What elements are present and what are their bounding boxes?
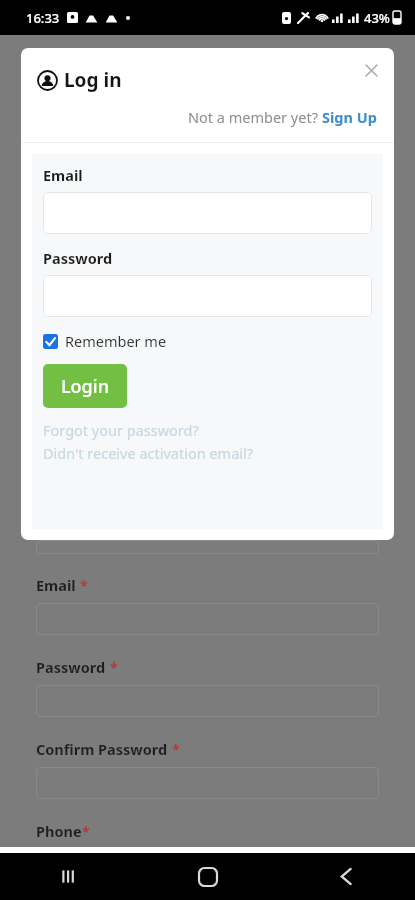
staticText: Login xyxy=(61,374,109,399)
staticText: Not a member yet? xyxy=(188,107,322,127)
button[interactable]: Text field xyxy=(43,275,372,317)
button[interactable]: Remember me xyxy=(43,331,167,351)
button[interactable]: Text field xyxy=(43,192,372,234)
staticText: 16:33 xyxy=(26,9,60,27)
staticText: Sign Up xyxy=(322,107,377,127)
button[interactable]: Email field xyxy=(36,603,379,635)
staticText: Log in xyxy=(64,67,122,93)
staticText: * xyxy=(110,658,118,677)
staticText: * xyxy=(82,822,90,841)
button[interactable]: Sign Up xyxy=(322,107,377,127)
button[interactable]: Didn't receive activation email? xyxy=(43,443,254,463)
button[interactable]: Close xyxy=(357,56,385,84)
staticText: Email xyxy=(36,575,76,595)
button[interactable]: Home xyxy=(139,853,277,900)
staticText: Email xyxy=(43,165,83,185)
button[interactable]: Password field xyxy=(36,685,379,717)
button[interactable]: Back xyxy=(277,853,415,900)
staticText: Phone xyxy=(36,821,82,841)
staticText: 43% xyxy=(364,9,390,27)
staticText: Password xyxy=(43,248,113,268)
staticText: Didn't receive activation email? xyxy=(43,443,254,463)
staticText: * xyxy=(172,740,180,759)
staticText: Confirm Password xyxy=(36,739,168,759)
button[interactable]: Recent apps xyxy=(0,853,139,900)
staticText: Password xyxy=(36,657,106,677)
staticText: * xyxy=(80,576,88,595)
button[interactable]: Login xyxy=(43,364,127,408)
button[interactable]: Forgot your password? xyxy=(43,420,199,440)
button[interactable]: Confirm Password field xyxy=(36,767,379,799)
staticText: Forgot your password? xyxy=(43,420,199,440)
staticText: Remember me xyxy=(65,331,167,351)
